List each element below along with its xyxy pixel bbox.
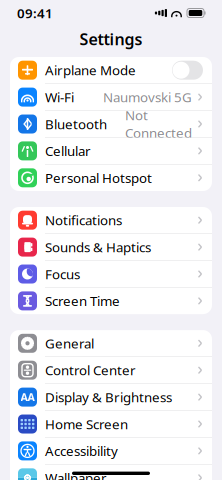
staticText: Sounds & Haptics	[45, 238, 151, 256]
button[interactable]: Sounds & Haptics	[10, 234, 212, 261]
button[interactable]: Home Screen	[10, 411, 212, 438]
staticText: 09:41	[17, 4, 53, 22]
button[interactable]: Notifications	[10, 207, 212, 234]
staticText: Accessibility	[45, 442, 118, 460]
button[interactable]: General	[10, 330, 212, 357]
button[interactable]: Cellular	[10, 138, 212, 165]
staticText: Display & Brightness	[45, 388, 172, 406]
staticText: Wi-Fi	[45, 88, 74, 106]
staticText: Focus	[45, 265, 80, 283]
staticText: Home Screen	[45, 415, 128, 433]
staticText: Naumovski 5G	[103, 88, 192, 106]
staticText: Cellular	[45, 142, 91, 160]
staticText: Bluetooth	[45, 115, 107, 133]
staticText: Airplane Mode	[45, 61, 136, 79]
button[interactable]: Airplane Mode	[10, 57, 212, 84]
button[interactable]: Bluetooth	[10, 111, 212, 138]
button[interactable]: Accessibility	[10, 438, 212, 465]
staticText: Personal Hotspot	[45, 169, 152, 187]
staticText: Wallpaper	[45, 469, 107, 480]
button[interactable]: Wallpaper	[10, 465, 212, 480]
staticText: Not Connected	[125, 106, 192, 142]
staticText: Settings	[79, 28, 142, 50]
staticText: Screen Time	[45, 292, 120, 310]
button[interactable]: Focus	[10, 261, 212, 288]
button[interactable]: Wi-Fi	[10, 84, 212, 111]
staticText: Control Center	[45, 361, 136, 379]
button[interactable]: Personal Hotspot	[10, 165, 212, 191]
button[interactable]: AA	[10, 384, 212, 411]
button[interactable]: Control Center	[10, 357, 212, 384]
staticText: AA	[20, 390, 34, 404]
staticText: General	[45, 334, 94, 352]
button[interactable]: Screen Time	[10, 288, 212, 314]
staticText: Notifications	[45, 211, 122, 229]
